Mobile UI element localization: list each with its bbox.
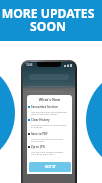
staticText: Zip to JPG (31, 145, 45, 149)
staticText: You can now save and share as PDF files (31, 137, 63, 143)
staticText: What's New (27, 97, 72, 102)
staticText: GOT IT (45, 165, 56, 169)
staticText: MORE UPDATES SOON (0, 5, 99, 35)
button[interactable]: GOT IT (29, 162, 71, 172)
staticText: You can now add your favourite files to … (31, 110, 67, 116)
staticText: Clear History (31, 118, 50, 122)
staticText: Enhanced filters to clear history in one… (31, 123, 67, 129)
staticText: You can now convert images zip files to … (31, 150, 64, 156)
staticText: Favourites Section (31, 105, 58, 109)
staticText: Save to PDF (31, 132, 48, 136)
staticText: 14:8 (26, 63, 33, 67)
